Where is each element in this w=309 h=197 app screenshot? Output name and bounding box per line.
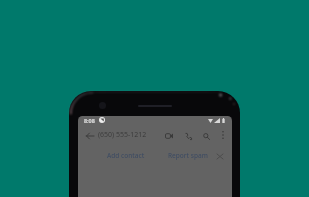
button[interactable]: Report spam: [165, 149, 211, 162]
button[interactable]: More options: [218, 130, 228, 140]
staticText: Report spam: [168, 151, 208, 160]
button[interactable]: Video call: [163, 130, 175, 142]
staticText: 8:08: [84, 117, 95, 124]
staticText: Add contact: [107, 151, 145, 160]
button[interactable]: Search: [200, 130, 212, 142]
button[interactable]: Add contact: [104, 149, 148, 162]
button[interactable]: Dismiss: [215, 151, 225, 161]
staticText: (650) 555-1212: [98, 130, 147, 140]
button[interactable]: Back: [84, 130, 95, 141]
button[interactable]: Call: [182, 130, 194, 142]
